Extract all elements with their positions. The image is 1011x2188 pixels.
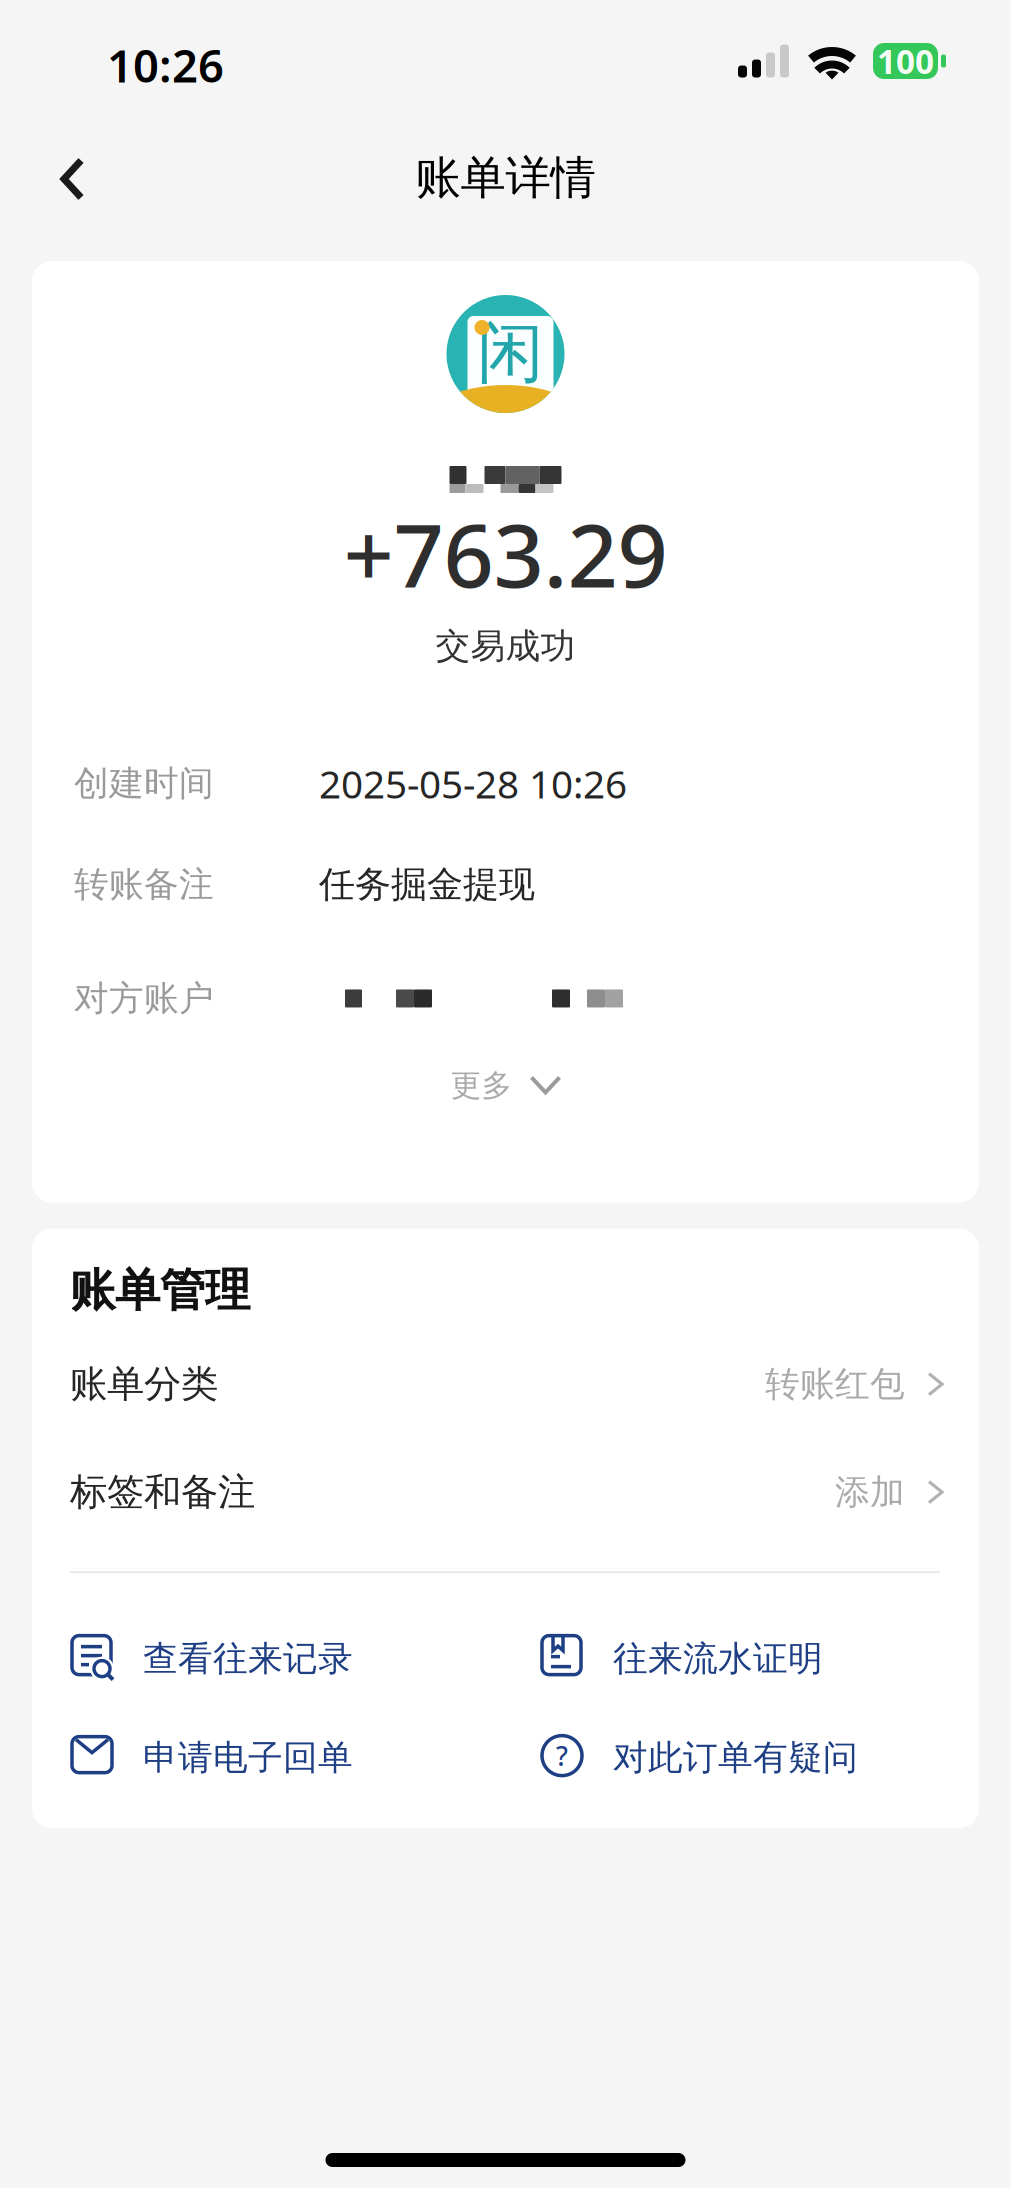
staticText: 转账红包	[765, 1363, 905, 1405]
staticText: 添加	[835, 1471, 905, 1513]
staticText: 交易成功	[435, 625, 575, 667]
staticText: 对此订单有疑问	[613, 1736, 858, 1779]
staticText: 账单详情	[415, 150, 595, 206]
staticText: 转账备注	[74, 863, 214, 906]
staticText: 2025-05-28 10:26	[319, 758, 627, 809]
button[interactable]: ?	[540, 1708, 959, 1807]
staticText: 创建时间	[74, 762, 214, 805]
staticText: 闲	[477, 312, 544, 394]
button[interactable]: 返回	[18, 127, 128, 231]
button[interactable]: 账单分类	[70, 1330, 959, 1438]
staticText: ?	[556, 1738, 568, 1773]
staticText: 对方账户	[74, 977, 214, 1020]
button[interactable]: 标签和备注	[70, 1438, 959, 1546]
staticText: 更多	[450, 1067, 512, 1104]
staticText: +763.29	[343, 495, 667, 612]
staticText: 账单管理	[70, 1262, 250, 1318]
staticText: 10:26	[107, 35, 224, 95]
button[interactable]: 查看往来记录	[70, 1609, 540, 1708]
button[interactable]: 申请电子回单	[70, 1708, 540, 1807]
staticText: 账单分类	[70, 1361, 218, 1407]
staticText: 申请电子回单	[143, 1736, 353, 1779]
staticText: 任务掘金提现	[319, 862, 535, 906]
staticText: 往来流水证明	[613, 1637, 823, 1680]
button[interactable]: 往来流水证明	[540, 1609, 959, 1708]
staticText: 标签和备注	[70, 1469, 255, 1515]
staticText: 查看往来记录	[143, 1637, 353, 1680]
staticText: 100	[877, 39, 934, 83]
button[interactable]: 更多	[450, 1054, 560, 1116]
